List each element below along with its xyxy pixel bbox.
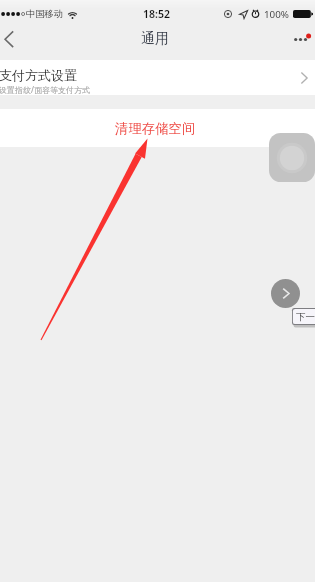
staticText: 通用 [141,30,169,48]
button[interactable]: Next [271,279,300,308]
button[interactable]: AssistiveTouch [269,133,315,182]
staticText: 清理存储空间 [115,120,196,137]
staticText: 设置指纹/面容等支付方式 [0,84,90,95]
staticText: 下一步 [296,311,315,323]
staticText: 中国移动 [26,8,63,20]
staticText: 18:52 [143,7,170,21]
button[interactable]: 清理存储空间 [0,109,315,147]
staticText: 100% [264,8,289,21]
button[interactable]: 下一步 [292,308,315,325]
button[interactable]: Back [0,27,24,51]
staticText: 支付方式设置 [0,67,77,83]
button[interactable]: 支付方式设置 [0,60,315,95]
button[interactable]: More options [288,27,312,51]
